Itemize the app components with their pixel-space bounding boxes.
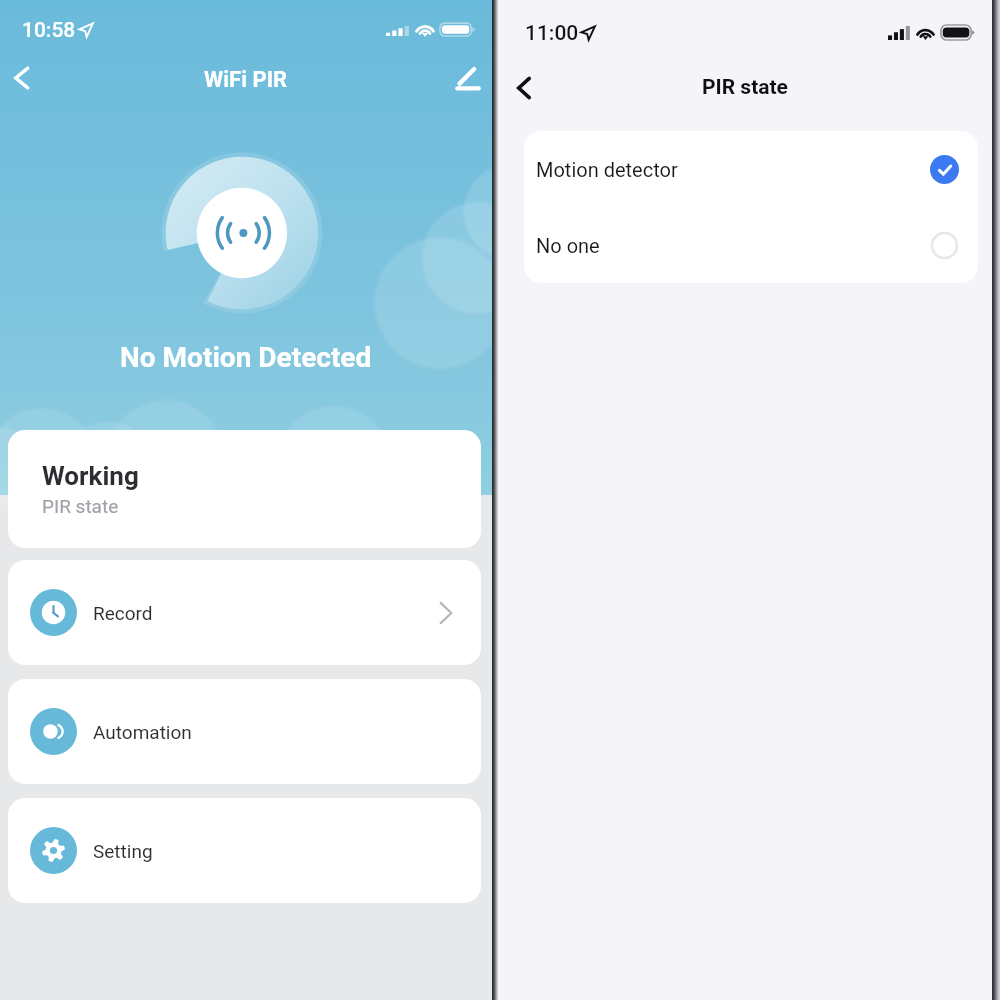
button[interactable]: No one [524, 207, 978, 283]
staticText: Setting [93, 840, 153, 862]
button[interactable]: Back [496, 60, 552, 116]
button[interactable]: Back [0, 53, 47, 103]
staticText: Motion detector [536, 158, 678, 181]
button[interactable]: Setting [8, 798, 481, 903]
staticText: No one [536, 234, 600, 257]
button[interactable]: Edit [443, 53, 493, 103]
button[interactable]: Automation [8, 679, 481, 784]
staticText: PIR state [702, 75, 788, 100]
staticText: 11:00 [525, 21, 579, 46]
staticText: Working [42, 461, 139, 491]
button[interactable]: Working [8, 430, 481, 548]
button[interactable]: Record [8, 560, 481, 665]
staticText: Automation [93, 721, 192, 743]
staticText: PIR state [42, 495, 119, 517]
staticText: WiFi PIR [204, 67, 288, 93]
staticText: 10:58 [22, 18, 76, 43]
staticText: Record [93, 602, 153, 624]
button[interactable]: Motion detector [524, 131, 978, 207]
staticText: No Motion Detected [120, 341, 372, 374]
